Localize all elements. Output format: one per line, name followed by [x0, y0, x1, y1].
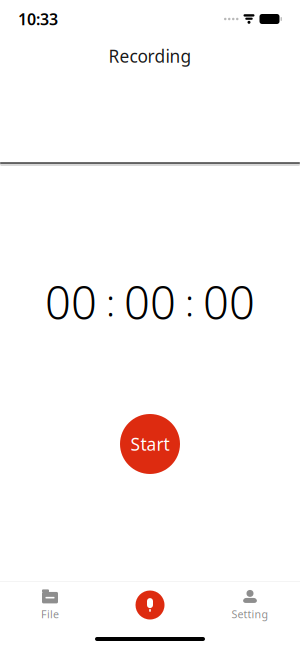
staticText: 00	[203, 272, 255, 332]
staticText: File	[41, 607, 59, 621]
staticText: Start	[130, 432, 169, 455]
staticText: 00	[124, 272, 176, 332]
staticText: Setting	[231, 607, 268, 621]
button[interactable]: Start	[120, 414, 180, 474]
button[interactable]: Record	[100, 582, 200, 628]
staticText: :	[106, 277, 115, 327]
staticText: 00	[45, 272, 97, 332]
button[interactable]: File	[0, 582, 100, 628]
staticText: Recording	[108, 44, 191, 67]
staticText: :	[185, 277, 194, 327]
staticText: 10:33	[18, 8, 58, 30]
button[interactable]: Setting	[200, 582, 300, 628]
